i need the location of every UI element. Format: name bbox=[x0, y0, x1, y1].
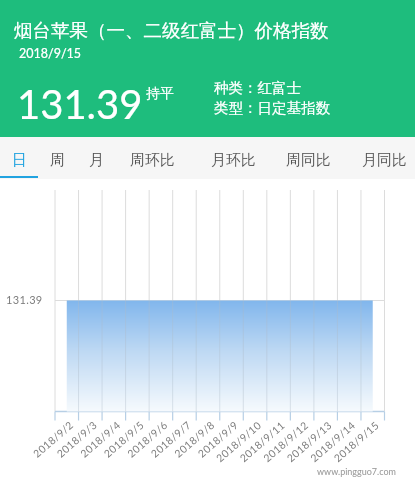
staticText: 月环比 bbox=[211, 151, 256, 170]
button[interactable]: 月 bbox=[76, 137, 123, 176]
button[interactable]: 周环比 bbox=[123, 137, 191, 176]
staticText: 月同比 bbox=[362, 151, 407, 170]
staticText: 月 bbox=[89, 151, 104, 170]
staticText: 烟台苹果（一、二级红富士）价格指数 bbox=[14, 19, 329, 42]
button[interactable]: 月环比 bbox=[191, 137, 269, 176]
staticText: 持平 bbox=[146, 85, 174, 103]
staticText: 类型：日定基指数 bbox=[214, 99, 330, 117]
staticText: 周同比 bbox=[286, 151, 331, 170]
staticText: 2018/9/15 bbox=[19, 46, 82, 61]
button[interactable]: 周 bbox=[37, 137, 76, 176]
button[interactable]: 周同比 bbox=[269, 137, 345, 176]
other: 烟台苹果价格指数走势图 bbox=[0, 0, 415, 484]
button[interactable]: 日 bbox=[0, 137, 37, 176]
staticText: 131.39 bbox=[17, 80, 143, 128]
staticText: 种类：红富士 bbox=[214, 79, 301, 97]
staticText: 日 bbox=[12, 151, 27, 170]
button[interactable]: 月同比 bbox=[345, 137, 415, 176]
staticText: 周环比 bbox=[130, 151, 175, 170]
staticText: 周 bbox=[50, 151, 65, 170]
